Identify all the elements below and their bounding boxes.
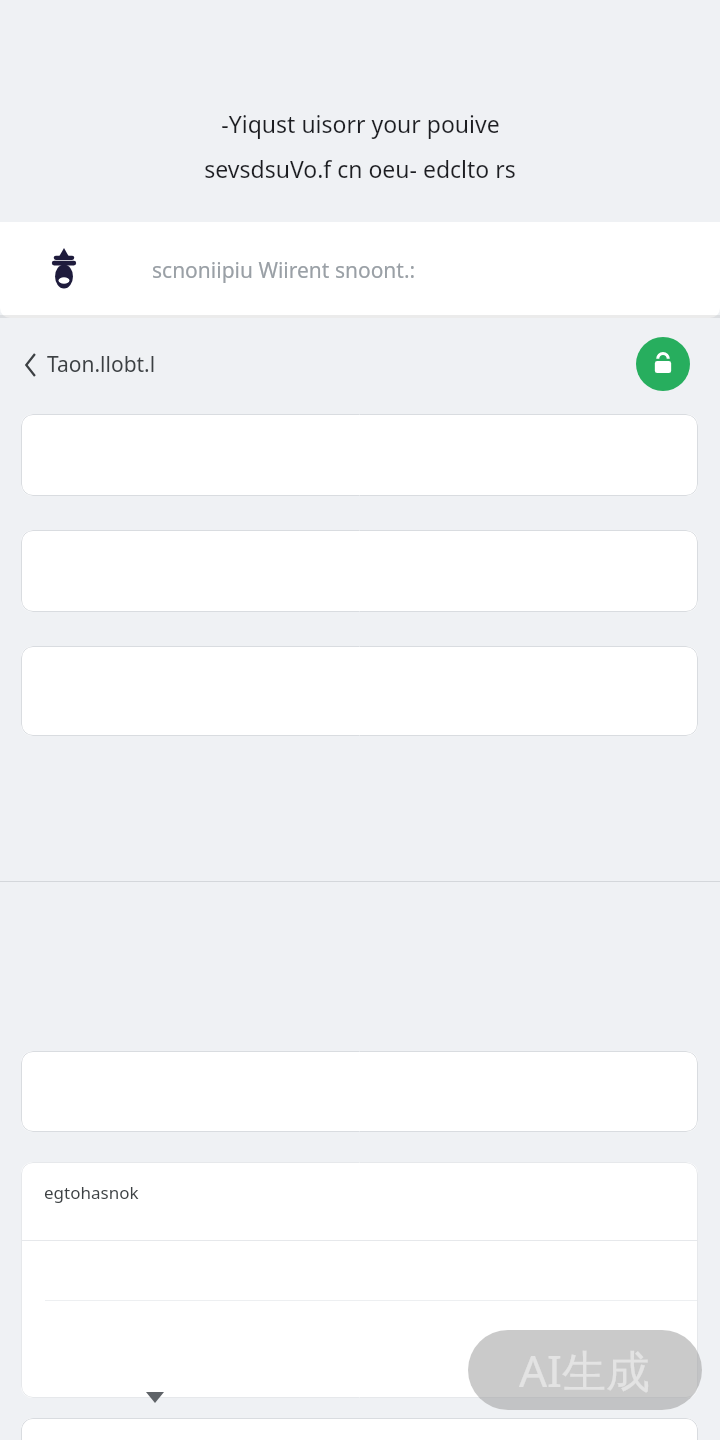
staticText: Taon.llobt.l [47,350,156,379]
staticText: AI生成 [519,1340,651,1400]
button[interactable] [21,414,698,496]
staticText: -Yiqust uisorr your pouive [221,108,500,139]
staticText: egtohasnok [44,1181,139,1204]
button[interactable]: Back [18,344,162,385]
button[interactable] [21,1418,698,1440]
button[interactable]: App logo [0,222,720,318]
other: Back [24,354,38,376]
staticText: sevsdsuVo.f cn oeu- edclto rs [204,153,516,184]
staticText: scnoniipiu Wiirent snoont.: [152,256,416,285]
button[interactable] [21,646,698,736]
button[interactable] [21,1051,698,1132]
other: App logo [48,247,80,293]
button[interactable] [21,530,698,612]
button[interactable]: Lock [636,337,690,391]
button[interactable]: egtohasnok [21,1162,698,1398]
